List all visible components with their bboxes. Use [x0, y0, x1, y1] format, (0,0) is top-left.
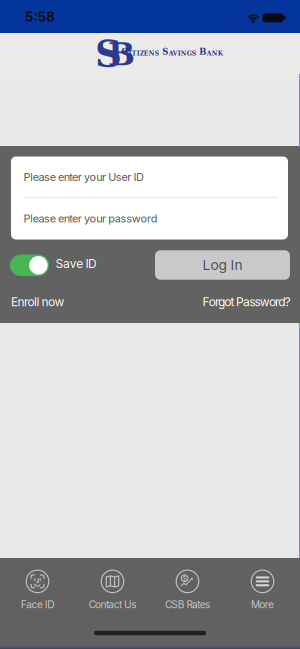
- staticText: ANK: [207, 49, 223, 57]
- staticText: CSB Rates: [165, 598, 210, 611]
- staticText: 5:58: [25, 8, 55, 25]
- staticText: AVINGS: [169, 49, 196, 57]
- staticText: Face ID: [21, 598, 54, 611]
- staticText: $: [183, 574, 187, 582]
- button[interactable]: Please enter your User ID: [11, 156, 288, 197]
- staticText: Enroll now: [11, 295, 64, 309]
- button[interactable]: More: [226, 568, 298, 611]
- staticText: Please enter your User ID: [23, 170, 144, 184]
- staticText: B: [108, 35, 135, 73]
- staticText: More: [251, 598, 274, 611]
- button[interactable]: Please enter your password: [11, 198, 288, 239]
- button[interactable]: CSB Rates: [151, 568, 223, 611]
- staticText: S: [159, 46, 168, 57]
- staticText: S: [95, 32, 122, 75]
- button[interactable]: Save ID: [10, 255, 49, 276]
- staticText: C: [121, 46, 128, 57]
- staticText: ITIZENS: [129, 49, 159, 57]
- staticText: Log In: [202, 257, 242, 273]
- staticText: Save ID: [55, 256, 97, 271]
- staticText: Please enter your password: [23, 212, 158, 225]
- button[interactable]: Contact Us: [76, 568, 148, 611]
- button[interactable]: Enroll now: [11, 295, 64, 309]
- button[interactable]: Log In: [155, 250, 290, 280]
- staticText: Contact Us: [89, 598, 136, 611]
- button[interactable]: Face ID: [1, 568, 73, 611]
- button[interactable]: Forgot Password?: [202, 295, 290, 309]
- staticText: B: [196, 46, 206, 57]
- staticText: Forgot Password?: [202, 295, 290, 309]
